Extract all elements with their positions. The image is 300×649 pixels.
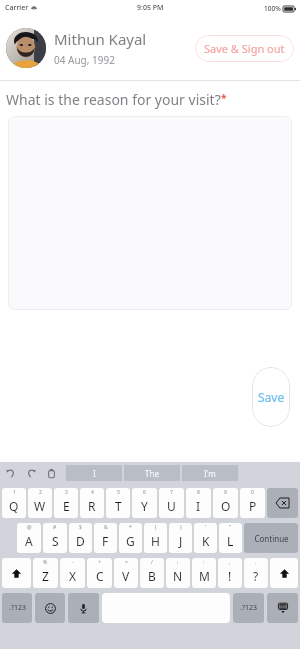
button[interactable]: # (43, 523, 67, 553)
staticText: J (179, 533, 183, 549)
staticText: U (167, 498, 176, 514)
staticText: 0 (251, 489, 254, 496)
staticText: F (102, 533, 109, 549)
staticText: 100% (264, 4, 281, 13)
button[interactable]: 7 (159, 488, 184, 518)
staticText: ) (180, 524, 182, 531)
staticText: - (72, 559, 74, 566)
button[interactable]: = (114, 558, 138, 588)
staticText: 1 (13, 489, 16, 496)
button[interactable]: & (94, 523, 117, 553)
staticText: " (229, 524, 232, 531)
staticText: K (202, 533, 210, 549)
button[interactable]: Hide keyboard (267, 593, 298, 623)
staticText: . (255, 559, 257, 566)
staticText: Y (141, 498, 148, 514)
staticText: B (148, 568, 156, 584)
staticText: P (249, 498, 257, 514)
staticText: , (229, 559, 231, 566)
staticText: Q (9, 498, 19, 514)
button[interactable]: The (124, 465, 180, 481)
button[interactable]: 8 (186, 488, 211, 518)
button[interactable]: . (244, 558, 268, 588)
button[interactable]: / (140, 558, 164, 588)
button[interactable]: 4 (80, 488, 104, 518)
button[interactable]: ; (166, 558, 190, 588)
staticText: ( (155, 524, 157, 531)
button[interactable]: - (60, 558, 85, 588)
button[interactable]: * (119, 523, 142, 553)
button[interactable]: 9 (213, 488, 238, 518)
staticText: E (63, 498, 70, 514)
button[interactable]: Undo (4, 466, 18, 480)
button[interactable]: : (192, 558, 216, 588)
button[interactable]: Shift (2, 558, 31, 588)
button[interactable]: , (218, 558, 242, 588)
staticText: Save & Sign out (204, 41, 285, 56)
staticText: V (122, 568, 130, 584)
staticText: $ (79, 524, 82, 531)
staticText: C (96, 568, 104, 584)
staticText: 04 Aug, 1992 (54, 53, 115, 67)
staticText: I (93, 468, 96, 479)
button[interactable]: 1 (2, 488, 26, 518)
button[interactable]: + (87, 558, 112, 588)
button[interactable]: ) (169, 523, 192, 553)
button[interactable]: % (33, 558, 58, 588)
button[interactable]: 5 (106, 488, 130, 518)
staticText: I (196, 498, 201, 514)
button[interactable]: Backspace (267, 488, 298, 518)
staticText: H (151, 533, 160, 549)
staticText: .?123 (240, 603, 257, 613)
button[interactable]: @ (17, 523, 41, 553)
staticText: I'm (204, 468, 216, 479)
button[interactable]: Shift (270, 558, 298, 588)
button[interactable]: $ (69, 523, 92, 553)
staticText: ; (177, 559, 179, 566)
staticText: # (53, 524, 57, 531)
staticText: @ (27, 524, 32, 531)
button[interactable]: Emoji (35, 593, 65, 623)
staticText: G (126, 533, 135, 549)
button[interactable]: ' (194, 523, 217, 553)
button[interactable]: 0 (240, 488, 265, 518)
button[interactable]: 2 (28, 488, 52, 518)
button[interactable]: Voice input (68, 593, 99, 623)
button[interactable]: Redo (24, 466, 38, 480)
staticText: R (88, 498, 96, 514)
button[interactable]: Paste (44, 466, 58, 480)
staticText: S (52, 533, 59, 549)
staticText: * (129, 524, 132, 531)
staticText: L (227, 533, 234, 549)
button[interactable]: Continue (244, 523, 298, 553)
staticText: = (125, 559, 128, 566)
staticText: 9:05 PM (137, 3, 164, 13)
staticText: 9 (224, 489, 227, 496)
staticText: 4 (91, 489, 94, 496)
staticText: Z (42, 568, 49, 584)
staticText: ? (253, 568, 259, 584)
button[interactable]: I'm (182, 465, 238, 481)
staticText: T (115, 498, 122, 514)
button[interactable]: .?123 (233, 593, 264, 623)
button[interactable]: " (219, 523, 242, 553)
button[interactable]: .?123 (2, 593, 32, 623)
button[interactable]: Save & Sign out (195, 35, 294, 62)
button[interactable]: 3 (54, 488, 78, 518)
staticText: M (199, 568, 210, 584)
staticText: A (25, 533, 33, 549)
staticText: .?123 (9, 603, 26, 613)
staticText: Mithun Kayal (54, 29, 147, 49)
button[interactable]: Save (252, 367, 290, 427)
staticText: ! (228, 568, 232, 584)
button[interactable]: 6 (132, 488, 157, 518)
button[interactable]: I (66, 465, 122, 481)
button[interactable]: ( (144, 523, 167, 553)
button[interactable]: Profile photo (6, 28, 46, 68)
staticText: 6 (143, 489, 146, 496)
staticText: & (104, 524, 108, 531)
staticText: * (221, 91, 227, 105)
staticText: What is the reason for your visit? (6, 90, 221, 109)
